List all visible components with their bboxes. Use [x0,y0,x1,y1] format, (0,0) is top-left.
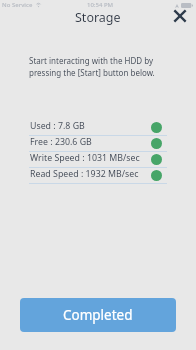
staticText: Read Speed : 1932 MB/sec [30,168,139,180]
staticText: No Service [2,1,33,9]
button[interactable]: Free : 230.6 GB [29,136,167,152]
button[interactable]: Close [170,6,190,26]
staticText: Storage [75,9,121,26]
staticText: Write Speed : 1031 MB/sec [30,152,140,164]
staticText: Start interacting with the HDD by pressi… [29,55,157,79]
staticText: Free : 230.6 GB [30,136,92,148]
staticText: Completed [63,306,133,324]
staticText: 10:54 PM [87,1,114,9]
button[interactable]: Completed [20,298,176,332]
button[interactable]: Write Speed : 1031 MB/sec [29,152,167,168]
staticText: Used : 7.8 GB [30,120,85,132]
button[interactable]: Read Speed : 1932 MB/sec [29,168,167,184]
button[interactable]: Used : 7.8 GB [29,120,167,136]
